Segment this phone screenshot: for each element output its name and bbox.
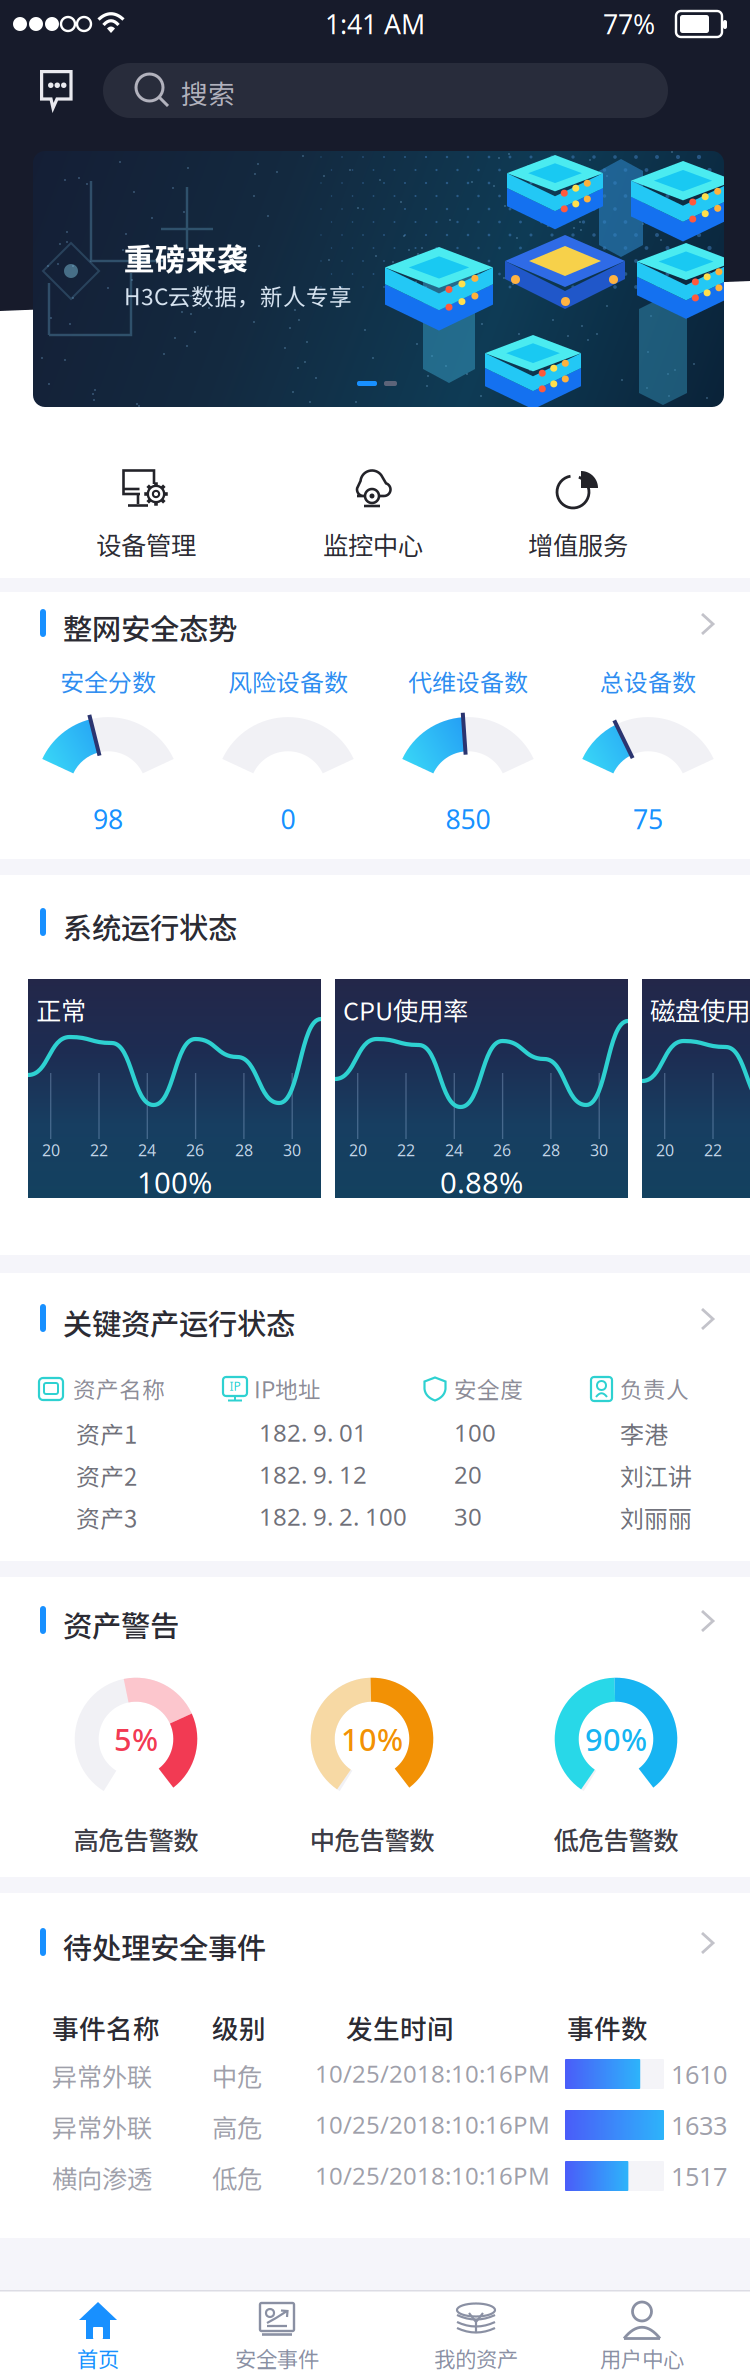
button[interactable]: 首页 (8, 2292, 188, 2375)
staticText: 高危 (212, 2108, 262, 2145)
button[interactable]: 更多 (684, 1297, 742, 1341)
staticText: 系统运行状态 (63, 905, 237, 947)
staticText: 28 (542, 1139, 560, 1161)
staticText: 182. 9. 12 (259, 1458, 367, 1491)
staticText: 资产警告 (63, 1603, 179, 1645)
staticText: 正常 (36, 991, 86, 1028)
staticText: 整网安全态势 (63, 606, 237, 648)
staticText: 30 (454, 1500, 482, 1533)
staticText: 级别 (212, 2008, 266, 2047)
button[interactable]: 增值服务 (470, 441, 686, 581)
staticText: 0.88% (440, 1162, 523, 1202)
staticText: 1:41 AM (325, 6, 425, 42)
staticText: 24 (138, 1139, 156, 1161)
staticText: 0 (280, 801, 295, 837)
staticText: 22 (704, 1139, 722, 1161)
staticText: 100% (137, 1162, 212, 1202)
staticText: 安全事件 (235, 2343, 319, 2373)
staticText: 重磅来袭 (124, 235, 248, 279)
staticText: 1610 (671, 2057, 727, 2091)
staticText: 22 (397, 1139, 415, 1161)
button[interactable]: 更多 (684, 1921, 742, 1965)
staticText: 异常外联 (52, 2108, 152, 2145)
staticText: 77% (603, 6, 655, 42)
staticText: 24 (445, 1139, 463, 1161)
staticText: 28 (235, 1139, 253, 1161)
staticText: 10/25/2018:10:16PM (315, 2108, 550, 2141)
staticText: 风险设备数 (228, 664, 348, 698)
staticText: 5% (114, 1718, 158, 1760)
staticText: 75 (633, 801, 663, 837)
staticText: 待处理安全事件 (63, 1925, 266, 1967)
staticText: 代维设备数 (408, 664, 528, 698)
staticText: 20 (349, 1139, 367, 1161)
staticText: 10/25/2018:10:16PM (315, 2057, 550, 2090)
staticText: 10% (341, 1718, 403, 1760)
staticText: 资产2 (76, 1458, 137, 1493)
staticText: 横向渗透 (52, 2159, 152, 2196)
staticText: 20 (454, 1458, 482, 1491)
staticText: 98 (93, 801, 123, 837)
staticText: 90% (585, 1718, 647, 1760)
staticText: 资产3 (76, 1500, 137, 1535)
staticText: 高危告警数 (73, 1821, 198, 1857)
staticText: 首页 (77, 2343, 119, 2373)
button[interactable]: 更多 (684, 1599, 742, 1643)
staticText: H3C云数据，新人专享 (124, 279, 352, 312)
staticText: 30 (590, 1139, 608, 1161)
staticText: 安全分数 (60, 664, 156, 698)
staticText: 磁盘使用率 (650, 991, 750, 1028)
staticText: 30 (283, 1139, 301, 1161)
staticText: 资产名称 (73, 1372, 165, 1405)
staticText: 刘江讲 (620, 1458, 692, 1493)
staticText: 10/25/2018:10:16PM (315, 2159, 550, 2192)
staticText: 850 (445, 801, 490, 837)
button[interactable]: 搜索 (103, 63, 668, 118)
staticText: 设备管理 (96, 526, 196, 562)
staticText: 26 (493, 1139, 511, 1161)
staticText: IP (229, 1378, 240, 1394)
staticText: 182. 9. 01 (259, 1416, 367, 1449)
staticText: 异常外联 (52, 2057, 152, 2094)
staticText: 我的资产 (434, 2343, 518, 2373)
staticText: 100 (454, 1416, 496, 1449)
staticText: 182. 9. 2. 100 (259, 1500, 407, 1533)
staticText: 安全度 (454, 1372, 523, 1405)
staticText: 刘丽丽 (620, 1500, 692, 1535)
staticText: 李港 (620, 1416, 668, 1451)
staticText: 总设备数 (600, 664, 696, 698)
staticText: 负责人 (620, 1372, 689, 1405)
staticText: 关键资产运行状态 (63, 1301, 295, 1343)
staticText: 1517 (671, 2159, 727, 2193)
button[interactable]: 更多 (684, 602, 742, 646)
button[interactable]: 重磅来袭 (33, 151, 724, 407)
staticText: 低危 (212, 2159, 262, 2196)
button[interactable]: 设备管理 (38, 441, 254, 581)
staticText: CPU使用率 (343, 991, 468, 1028)
staticText: 中危告警数 (309, 1821, 434, 1857)
staticText: 事件名称 (52, 2008, 160, 2047)
button[interactable]: 安全事件 (187, 2292, 367, 2375)
staticText: 低危告警数 (553, 1821, 678, 1857)
button[interactable]: 我的资产 (386, 2292, 566, 2375)
button[interactable]: 用户中心 (552, 2292, 732, 2375)
staticText: 资产1 (76, 1416, 137, 1451)
staticText: 26 (186, 1139, 204, 1161)
staticText: 增值服务 (528, 526, 628, 562)
staticText: 1633 (671, 2108, 727, 2142)
staticText: 监控中心 (323, 526, 423, 562)
staticText: 20 (42, 1139, 60, 1161)
staticText: IP地址 (254, 1372, 321, 1405)
staticText: 用户中心 (600, 2343, 684, 2373)
button[interactable]: 消息 (24, 58, 94, 122)
staticText: 中危 (212, 2057, 262, 2094)
button[interactable]: 监控中心 (265, 441, 481, 581)
staticText: 发生时间 (346, 2008, 454, 2047)
staticText: 22 (90, 1139, 108, 1161)
staticText: 搜索 (181, 73, 235, 112)
staticText: 事件数 (567, 2008, 648, 2047)
staticText: 20 (656, 1139, 674, 1161)
